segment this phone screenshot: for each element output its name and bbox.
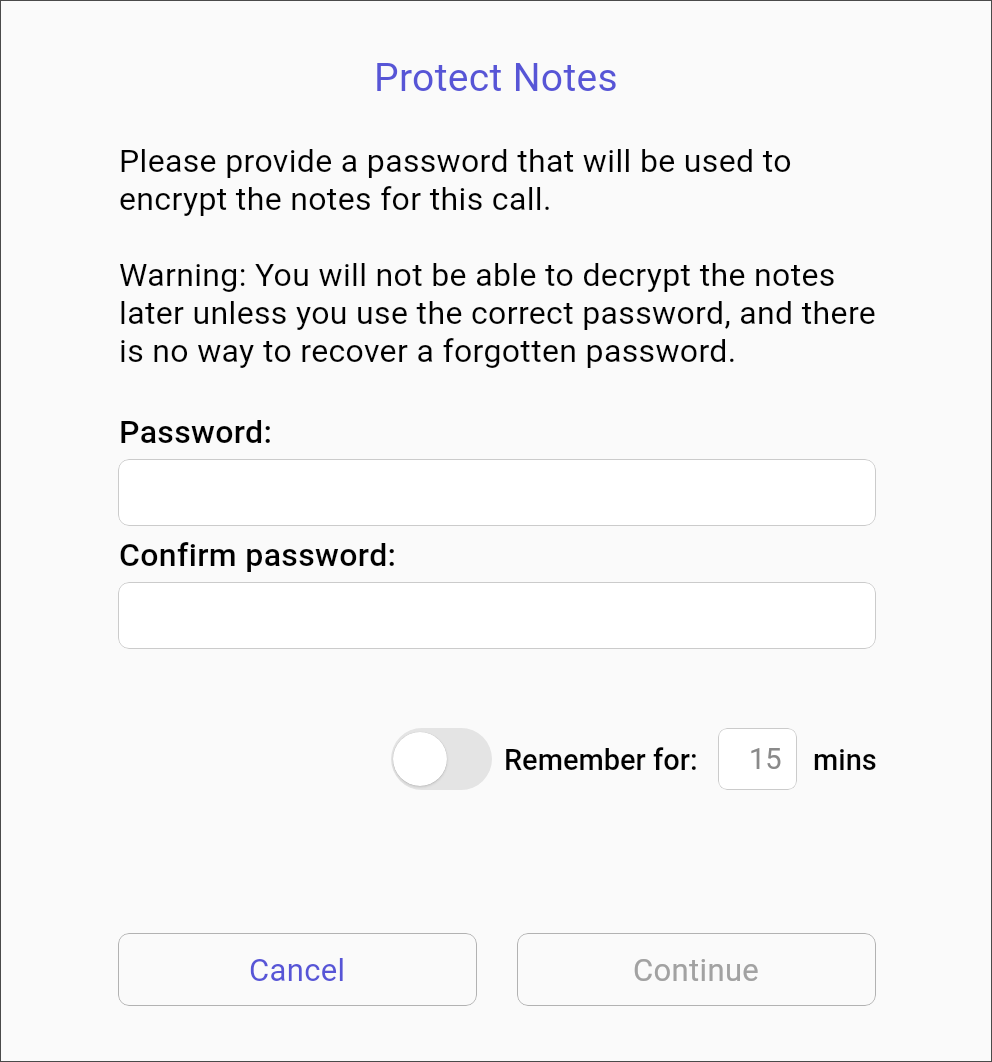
- staticText: Please provide a password that will be u…: [119, 142, 880, 218]
- staticText: Confirm password:: [119, 536, 397, 574]
- button[interactable]: Confirm password text field: [118, 582, 876, 649]
- button[interactable]: Password text field: [118, 459, 876, 526]
- staticText: 15: [749, 742, 782, 776]
- staticText: Warning: You will not be able to decrypt…: [119, 256, 880, 370]
- staticText: Password:: [119, 413, 273, 451]
- staticText: Continue: [633, 952, 760, 988]
- button[interactable]: Continue: [517, 933, 876, 1006]
- button[interactable]: Minutes to remember password: [718, 728, 797, 790]
- button[interactable]: Remember password, switch off: [391, 728, 492, 790]
- staticText: mins: [813, 743, 877, 777]
- staticText: Protect Notes: [1, 55, 991, 101]
- staticText: Remember for:: [504, 743, 698, 777]
- button[interactable]: Cancel: [118, 933, 477, 1006]
- staticText: Cancel: [249, 952, 346, 988]
